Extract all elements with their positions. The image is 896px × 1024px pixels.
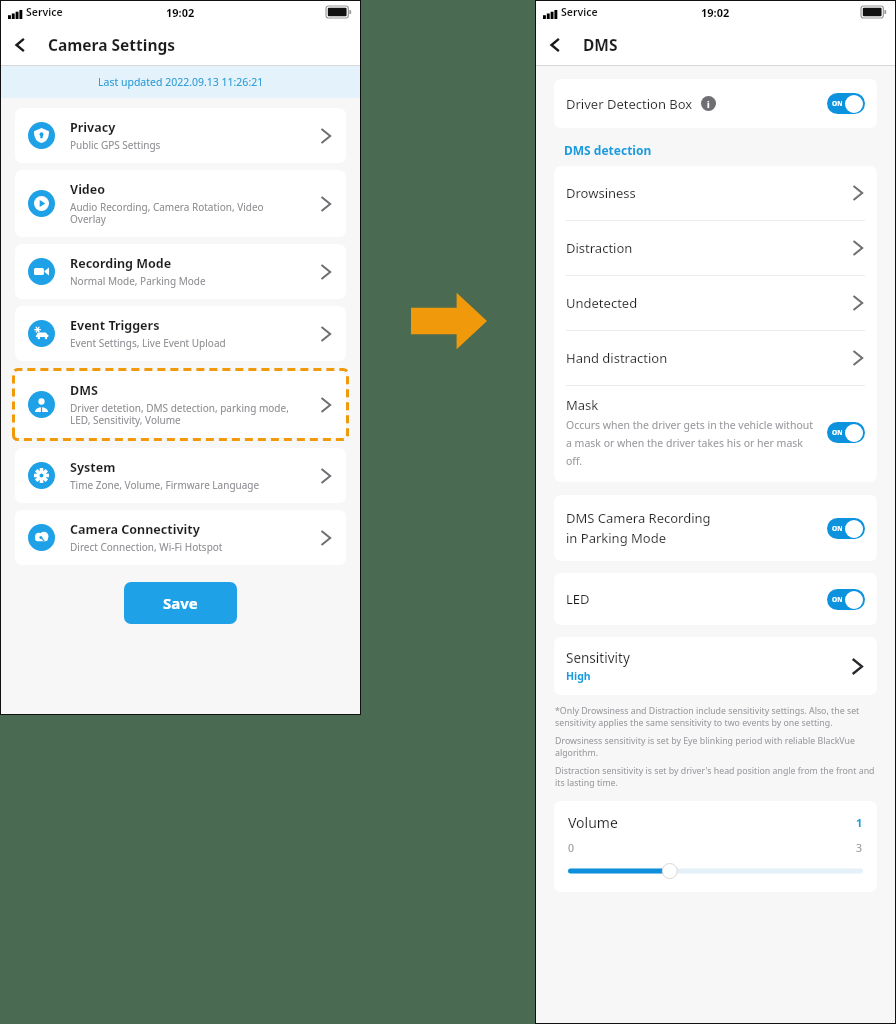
staticText: Sensitivity — [566, 649, 630, 667]
button[interactable]: Recording Mode — [15, 244, 346, 299]
staticText: DMS Camera Recording in Parking Mode — [566, 509, 827, 547]
staticText: Direct Connection, Wi-Fi Hotspot — [70, 540, 223, 554]
button[interactable]: Undetected — [566, 276, 865, 330]
staticText: Hand distraction — [566, 349, 851, 367]
button[interactable] — [568, 862, 863, 880]
staticText: Last updated 2022.09.13 11:26:21 — [98, 75, 264, 89]
staticText: ON — [832, 428, 843, 437]
staticText: Driver detetion, DMS detection, parking … — [70, 401, 289, 427]
button[interactable]: DMS — [15, 371, 346, 438]
staticText: DMS — [583, 34, 618, 55]
staticText: ON — [832, 595, 843, 604]
staticText: Mask — [566, 396, 599, 414]
staticText: Audio Recording, Camera Rotation, Video … — [70, 200, 264, 226]
staticText: Driver Detection Box — [566, 95, 693, 113]
staticText: DMS detection — [564, 142, 652, 158]
button[interactable]: Back — [1, 25, 41, 65]
button[interactable]: Video — [15, 170, 346, 237]
staticText: Distraction sensitivity is set by driver… — [555, 765, 876, 789]
staticText: Event Settings, Live Event Upload — [70, 336, 226, 350]
staticText: Volume — [568, 813, 856, 832]
button[interactable]: Toggle on — [827, 589, 865, 610]
button[interactable]: Event Triggers — [15, 306, 346, 361]
staticText: Camera Connectivity — [70, 521, 200, 538]
button[interactable]: System — [15, 448, 346, 503]
staticText: Time Zone, Volume, Firmware Language — [70, 478, 260, 492]
staticText: DMS — [70, 382, 98, 399]
button[interactable]: Drowsiness — [566, 166, 865, 220]
staticText: Privacy — [70, 119, 116, 136]
button[interactable]: Toggle on — [827, 422, 865, 443]
staticText: Distraction — [566, 239, 851, 257]
button[interactable]: Camera Connectivity — [15, 510, 346, 565]
button[interactable]: Privacy — [15, 108, 346, 163]
button[interactable]: Hand distraction — [566, 331, 865, 385]
staticText: Recording Mode — [70, 255, 172, 272]
staticText: System — [70, 459, 116, 476]
staticText: i — [707, 98, 710, 110]
staticText: 3 — [856, 841, 863, 855]
staticText: 19:02 — [701, 5, 730, 20]
staticText: 19:02 — [166, 5, 195, 20]
staticText: Event Triggers — [70, 317, 160, 334]
button[interactable]: Driver Detection Box — [554, 79, 877, 128]
button[interactable]: Toggle on — [827, 93, 865, 114]
staticText: *Only Drowsiness and Distraction include… — [555, 705, 876, 729]
button[interactable]: Toggle on — [827, 518, 865, 539]
button[interactable]: LED — [554, 573, 877, 625]
button[interactable]: Save — [124, 582, 237, 624]
staticText: Drowsiness — [566, 184, 851, 202]
staticText: Public GPS Settings — [70, 138, 161, 152]
button[interactable]: DMS Camera Recording in Parking Mode — [554, 495, 877, 561]
staticText: Service — [26, 5, 63, 19]
staticText: LED — [566, 590, 827, 608]
staticText: Undetected — [566, 294, 851, 312]
button[interactable]: Distraction — [566, 221, 865, 275]
staticText: ON — [832, 524, 843, 533]
button[interactable]: Back — [536, 25, 576, 65]
staticText: Occurs when the driver gets in the vehic… — [566, 418, 817, 468]
staticText: Normal Mode, Parking Mode — [70, 274, 206, 288]
staticText: Video — [70, 181, 106, 198]
button[interactable]: Mask — [566, 386, 865, 482]
button[interactable]: Sensitivity — [554, 637, 877, 695]
staticText: ON — [832, 99, 843, 108]
staticText: 0 — [568, 841, 856, 855]
staticText: High — [566, 669, 591, 683]
staticText: Drowsiness sensitivity is set by Eye bli… — [555, 735, 876, 759]
staticText: Save — [163, 593, 198, 613]
staticText: 1 — [856, 815, 863, 830]
staticText: Camera Settings — [48, 34, 176, 55]
button[interactable]: Info — [701, 96, 716, 111]
staticText: Service — [561, 5, 598, 19]
